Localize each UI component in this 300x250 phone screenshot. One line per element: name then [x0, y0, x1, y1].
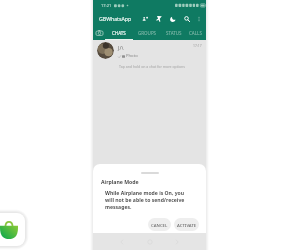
button[interactable]: Add contact: [138, 11, 151, 26]
staticText: While Airplane mode is On, you will not …: [105, 190, 185, 211]
staticText: GROUPS: [138, 30, 157, 36]
button[interactable]: App icon: [0, 213, 25, 246]
staticText: Tap and hold on a chat for more options: [119, 64, 185, 69]
staticText: STATUS: [166, 30, 182, 36]
staticText: CANCEL: [151, 222, 168, 228]
staticText: GBWhatsApp: [99, 15, 132, 22]
staticText: CHATS: [112, 30, 126, 36]
button[interactable]: STATUS: [160, 26, 188, 40]
button[interactable]: GROUPS: [133, 26, 161, 40]
staticText: Photo: [126, 53, 138, 59]
button[interactable]: Airplane mode: [152, 11, 165, 26]
button[interactable]: Search: [180, 11, 193, 26]
button[interactable]: CHATS: [106, 26, 132, 40]
button[interactable]: Camera: [93, 26, 106, 40]
button[interactable]: CALLS: [181, 26, 209, 40]
staticText: CALLS: [189, 30, 202, 36]
button[interactable]: J/\: [93, 40, 206, 60]
button[interactable]: ACTIVATE: [174, 218, 199, 231]
button[interactable]: More options: [192, 11, 205, 26]
staticText: 17:21: [101, 3, 112, 8]
staticText: Airplane Mode: [101, 178, 139, 185]
staticText: 17:17: [193, 43, 202, 48]
button[interactable]: Do not disturb: [166, 11, 179, 26]
staticText: ACTIVATE: [177, 222, 197, 228]
button[interactable]: CANCEL: [148, 218, 171, 231]
staticText: J/\: [118, 44, 124, 51]
